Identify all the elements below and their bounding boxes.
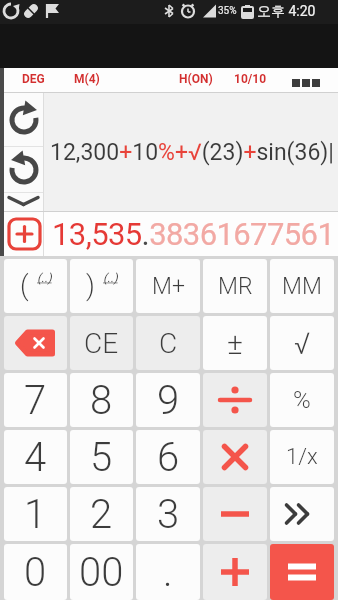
staticText: 6 (157, 434, 180, 481)
staticText: ( (20, 270, 29, 302)
button[interactable] (270, 487, 334, 541)
staticText: 3 (157, 491, 180, 538)
staticText: 8 (90, 377, 113, 424)
staticText: ± (227, 326, 243, 361)
button[interactable]: 1/x (270, 430, 334, 484)
button[interactable]: 00 (70, 544, 133, 600)
staticText: 00 (79, 549, 124, 596)
staticText: (..) (37, 271, 52, 285)
button[interactable]: CE (70, 316, 133, 370)
button[interactable] (203, 487, 267, 541)
button[interactable]: . (136, 544, 200, 600)
button[interactable]: MM (270, 259, 334, 313)
button[interactable] (4, 147, 43, 192)
staticText: √ (294, 326, 311, 361)
staticText: 9 (157, 377, 180, 424)
button[interactable]: 2 (70, 487, 133, 541)
staticText: CE (84, 327, 119, 360)
button[interactable]: 0 (4, 544, 67, 600)
button[interactable]: 7 (4, 373, 67, 427)
staticText: 10/10 (234, 72, 267, 86)
button[interactable]: 1 (4, 487, 67, 541)
staticText: . (163, 549, 173, 596)
button[interactable] (203, 430, 267, 484)
staticText: 5 (90, 434, 113, 481)
button[interactable] (270, 544, 334, 600)
button[interactable]: 6 (136, 430, 200, 484)
button[interactable]: ( (4, 259, 67, 313)
staticText: DEG (22, 72, 45, 86)
staticText: 0 (24, 549, 47, 596)
button[interactable] (4, 93, 43, 146)
button[interactable] (4, 193, 43, 211)
staticText: 7 (24, 377, 47, 424)
button[interactable]: 3 (136, 487, 200, 541)
button[interactable]: ± (203, 316, 267, 370)
button[interactable] (4, 316, 67, 370)
staticText: 2 (90, 491, 113, 538)
staticText: 오후 4:20 (257, 3, 316, 21)
button[interactable]: 4 (4, 430, 67, 484)
button[interactable]: % (270, 373, 334, 427)
staticText: M(4) (74, 72, 100, 86)
button[interactable] (203, 373, 267, 427)
staticText: 1 (24, 491, 47, 538)
staticText: H(ON) (179, 72, 213, 86)
staticText: C (159, 327, 178, 360)
button[interactable] (4, 212, 43, 256)
staticText: % (293, 386, 311, 414)
staticText: 13,535.38361677561 (52, 216, 335, 252)
staticText: (..) (103, 271, 118, 285)
button[interactable]: √ (270, 316, 334, 370)
staticText: 4 (24, 434, 47, 481)
staticText: MR (218, 273, 253, 300)
button[interactable]: C (136, 316, 200, 370)
staticText: MM (282, 273, 322, 300)
staticText: 12,300+10%+√(23)+sin(36)| (50, 139, 334, 166)
button[interactable]: M+ (136, 259, 200, 313)
button[interactable]: MR (203, 259, 267, 313)
staticText: 35% (218, 5, 237, 17)
staticText: 1/x (286, 444, 318, 470)
staticText: ) (86, 270, 95, 302)
button[interactable]: ) (70, 259, 133, 313)
button[interactable]: 9 (136, 373, 200, 427)
button[interactable]: 5 (70, 430, 133, 484)
staticText: M+ (152, 273, 185, 300)
button[interactable]: 8 (70, 373, 133, 427)
button[interactable] (203, 544, 267, 600)
